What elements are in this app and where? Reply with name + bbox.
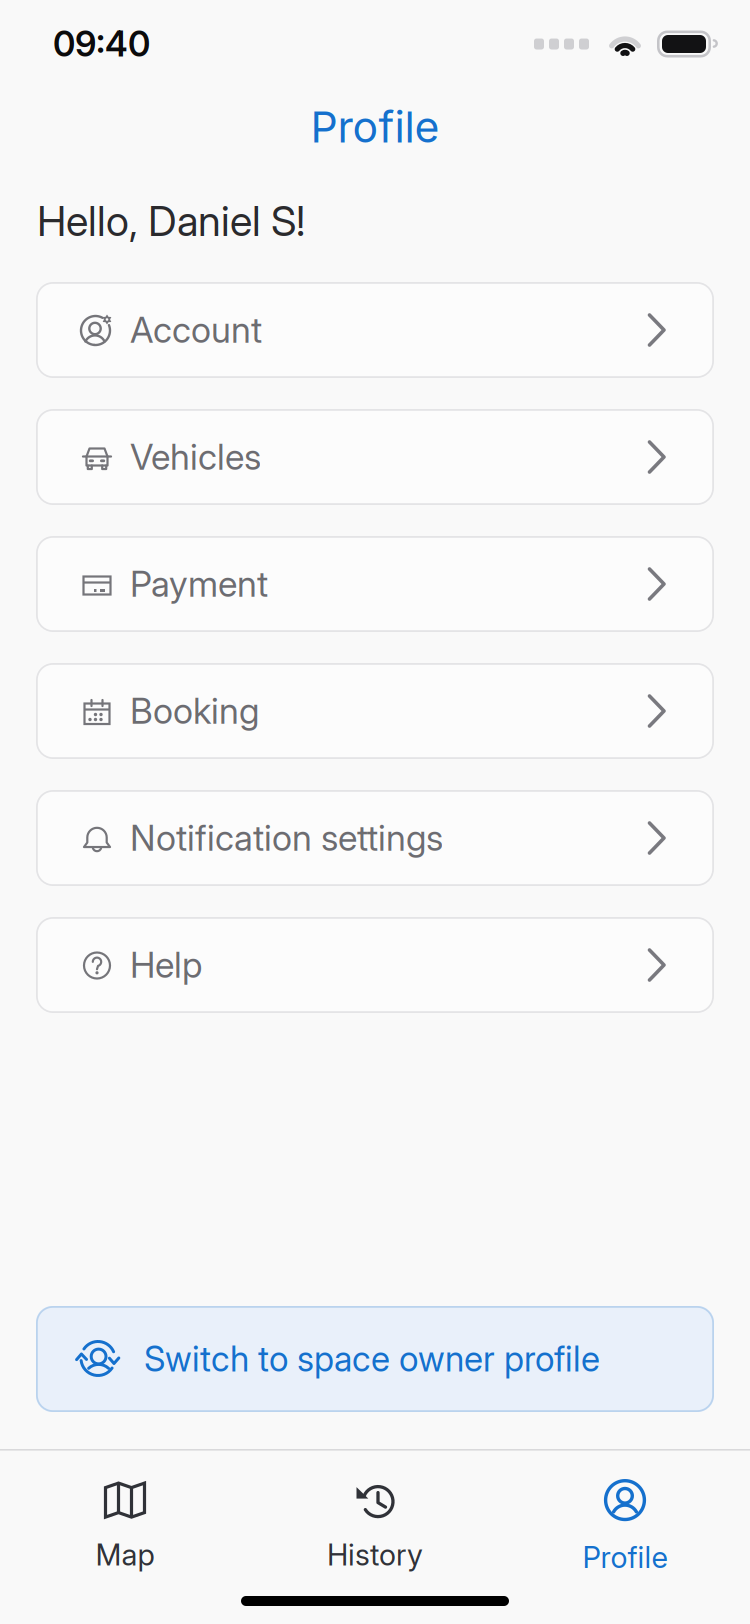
staticText: Help	[130, 944, 202, 986]
staticText: Payment	[130, 563, 268, 605]
staticText: Hello, Daniel S!	[37, 196, 305, 246]
button[interactable]: Vehicles	[36, 409, 714, 505]
staticText: History	[327, 1537, 423, 1573]
staticText: Profile	[582, 1540, 667, 1575]
staticText: Vehicles	[130, 436, 261, 478]
staticText: Switch to space owner profile	[144, 1338, 600, 1380]
button[interactable]: Payment	[36, 536, 714, 632]
staticText: Booking	[130, 690, 259, 732]
button[interactable]: Account	[36, 282, 714, 378]
button[interactable]: Profile	[500, 1479, 750, 1575]
button[interactable]: Notification settings	[36, 790, 714, 886]
button[interactable]: Help	[36, 917, 714, 1013]
staticText: 09:40	[53, 23, 150, 65]
button[interactable]: Booking	[36, 663, 714, 759]
staticText: Map	[95, 1537, 154, 1573]
staticText: Account	[130, 309, 262, 351]
staticText: Notification settings	[130, 817, 443, 859]
button[interactable]: History	[250, 1481, 500, 1573]
button[interactable]: Switch to space owner profile	[36, 1306, 714, 1412]
button[interactable]: Map	[0, 1481, 250, 1573]
staticText: Profile	[310, 101, 439, 153]
